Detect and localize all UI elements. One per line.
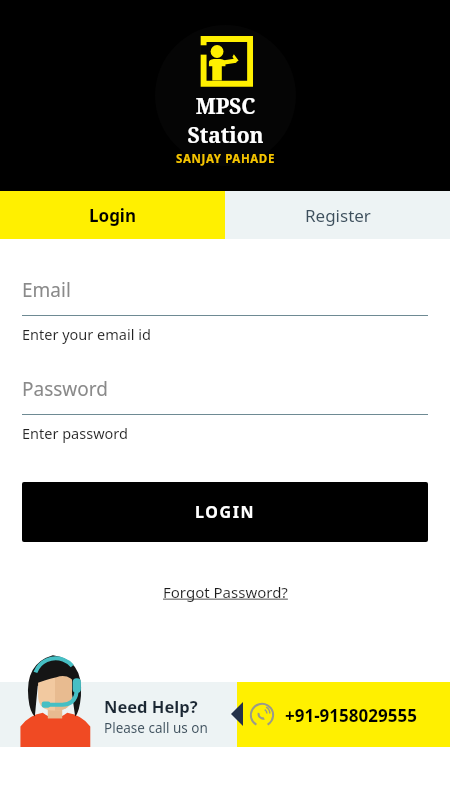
staticText: +91-9158029555	[285, 704, 417, 727]
staticText: MPSC Station	[155, 92, 296, 150]
button[interactable]: Login	[0, 191, 225, 239]
staticText: Forgot Password?	[163, 582, 288, 602]
button[interactable]: Email	[22, 277, 428, 344]
staticText: Password	[22, 376, 108, 402]
staticText: SANJAY PAHADE	[176, 151, 275, 166]
staticText: Email	[22, 277, 71, 303]
staticText: LOGIN	[195, 501, 256, 523]
staticText: Please call us on	[104, 719, 208, 737]
button[interactable]: Forgot Password?	[157, 580, 294, 604]
button[interactable]: Register	[225, 191, 450, 239]
staticText: Register	[305, 204, 371, 227]
other: Support agent	[19, 645, 91, 747]
button[interactable]: LOGIN	[22, 482, 428, 542]
button[interactable]: Call support	[237, 682, 450, 747]
staticText: Enter password	[22, 423, 128, 443]
staticText: Login	[89, 204, 137, 227]
staticText: Need Help?	[104, 695, 198, 717]
button[interactable]: Password	[22, 376, 428, 443]
other: Call support	[249, 702, 275, 728]
staticText: Enter your email id	[22, 324, 151, 344]
